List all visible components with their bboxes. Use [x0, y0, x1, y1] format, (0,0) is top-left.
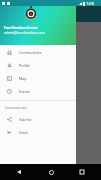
staticText: Submit — [19, 117, 31, 122]
staticText: Communicate — [5, 105, 27, 109]
staticText: 1:00 — [86, 1, 94, 6]
button[interactable]: Profile — [0, 59, 76, 72]
button[interactable]: Map — [0, 72, 76, 85]
button[interactable]: Submit — [0, 113, 76, 126]
button[interactable]: Recents — [70, 164, 94, 180]
staticText: admin@fourdirections.com — [4, 31, 45, 35]
button[interactable]: Communities — [0, 46, 76, 59]
staticText: Profile — [19, 63, 30, 68]
button[interactable]: Home — [39, 164, 63, 180]
button[interactable]: Back — [7, 164, 31, 180]
staticText: Four Directions Events — [4, 26, 38, 30]
staticText: Events — [19, 89, 31, 94]
staticText: Communities — [19, 50, 42, 55]
staticText: Map — [19, 76, 27, 81]
button[interactable]: Send — [0, 126, 76, 139]
staticText: Send — [19, 130, 28, 135]
button[interactable]: Events — [0, 85, 76, 98]
